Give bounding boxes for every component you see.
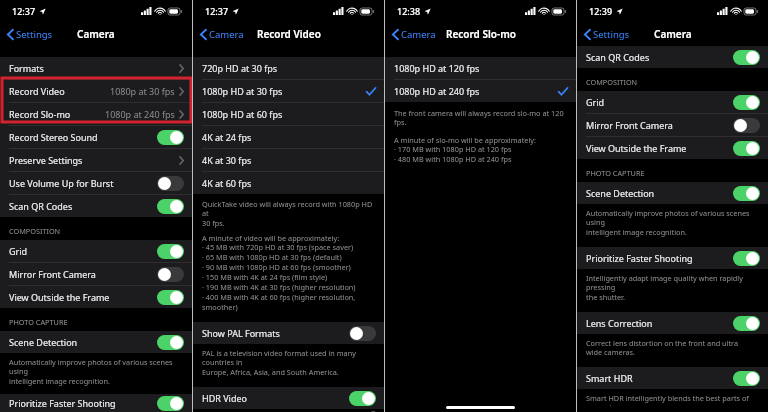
staticText: Record Slo-mo	[446, 27, 516, 41]
staticText: Smart HDR intelligently blends the best …	[586, 393, 759, 406]
button[interactable]: 1080p HD at 120 fps	[385, 57, 576, 80]
staticText: 720p HD at 30 fps	[202, 62, 278, 74]
staticText: Scene Detection	[9, 336, 78, 348]
button[interactable]: On	[157, 396, 184, 411]
staticText: 4K at 30 fps	[202, 154, 252, 166]
staticText: Grid	[9, 245, 28, 257]
staticText: 12:39	[589, 5, 613, 17]
staticText: Camera	[401, 28, 436, 41]
staticText: PAL is a television video format used in…	[202, 348, 375, 378]
button[interactable]: Back to Camera	[390, 25, 438, 44]
staticText: 1080p HD at 60 fps	[202, 108, 283, 120]
staticText: HDR Video	[202, 392, 247, 404]
staticText: Scene Detection	[586, 187, 655, 199]
button[interactable]: Show PAL Formats	[193, 322, 384, 344]
staticText: 1080p HD at 240 fps	[394, 85, 480, 97]
button[interactable]: Grid	[0, 240, 192, 263]
button[interactable]: Off	[733, 118, 760, 133]
staticText: 1080p HD at 120 fps	[394, 62, 480, 74]
button[interactable]: On	[733, 141, 760, 156]
button[interactable]: Prioritize Faster Shooting	[577, 247, 768, 269]
staticText: Prioritize Faster Shooting	[586, 252, 693, 264]
button[interactable]: Scene Detection	[0, 331, 192, 353]
button[interactable]: Smart HDR	[577, 367, 768, 389]
staticText: Prioritize Faster Shooting	[9, 397, 116, 409]
staticText: PHOTO CAPTURE	[9, 317, 192, 327]
button[interactable]: Preserve Settings	[0, 149, 192, 172]
button[interactable]: Scan QR Codes	[577, 46, 768, 68]
button[interactable]: 4K at 30 fps	[193, 149, 384, 172]
button[interactable]: Record Stereo Sound	[0, 126, 192, 149]
button[interactable]: 720p HD at 30 fps	[193, 57, 384, 80]
staticText: Record Video	[257, 27, 321, 41]
staticText: Preserve Settings	[9, 154, 83, 166]
button[interactable]: On	[733, 95, 760, 110]
staticText: Smart HDR	[586, 372, 633, 384]
button[interactable]: Back to Camera	[198, 25, 246, 44]
staticText: View Outside the Frame	[9, 291, 110, 303]
staticText: Settings	[16, 28, 53, 41]
staticText: Scan QR Codes	[9, 200, 73, 212]
staticText: Automatically improve photos of various …	[9, 357, 183, 387]
staticText: COMPOSITION	[9, 226, 192, 236]
staticText: Settings	[593, 28, 630, 41]
button[interactable]: On	[733, 251, 760, 266]
button[interactable]: Use Volume Up for Burst	[0, 172, 192, 195]
button[interactable]: Back to Settings	[5, 25, 55, 44]
staticText: A minute of video will be approximately:…	[202, 233, 375, 313]
button[interactable]: On	[733, 316, 760, 331]
staticText: Show PAL Formats	[202, 327, 280, 339]
staticText: Formats	[9, 62, 44, 74]
button[interactable]: Record Slo-mo	[0, 103, 192, 126]
staticText: 4K at 24 fps	[202, 131, 252, 143]
button[interactable]: 4K at 24 fps	[193, 126, 384, 149]
staticText: Mirror Front Camera	[9, 268, 96, 280]
button[interactable]: On	[157, 130, 184, 145]
staticText: Grid	[586, 96, 605, 108]
staticText: Mirror Front Camera	[586, 119, 673, 131]
staticText: 1080p HD at 30 fps	[202, 85, 283, 97]
button[interactable]: On	[733, 186, 760, 201]
button[interactable]: View Outside the Frame	[0, 286, 192, 308]
button[interactable]: Off	[349, 326, 376, 341]
staticText: Automatically improve photos of various …	[586, 208, 759, 238]
button[interactable]: Lens Correction	[577, 312, 768, 334]
button[interactable]: Mirror Front Camera	[0, 263, 192, 286]
staticText: Camera	[654, 27, 692, 41]
staticText: COMPOSITION	[586, 77, 768, 87]
button[interactable]: 1080p HD at 30 fps	[193, 80, 384, 103]
staticText: Record Stereo Sound	[9, 131, 98, 143]
button[interactable]: 1080p HD at 60 fps	[193, 103, 384, 126]
button[interactable]: On	[157, 290, 184, 305]
staticText: QuickTake video will always record with …	[202, 199, 375, 229]
button[interactable]: 4K at 60 fps	[193, 172, 384, 194]
staticText: Camera	[77, 27, 115, 41]
button[interactable]: View Outside the Frame	[577, 137, 768, 159]
staticText: 1080p at 240 fps	[105, 108, 175, 120]
button[interactable]: Mirror Front Camera	[577, 114, 768, 137]
button[interactable]: Off	[157, 176, 184, 191]
staticText: Scan QR Codes	[586, 51, 650, 63]
staticText: Use Volume Up for Burst	[9, 177, 114, 189]
button[interactable]: Record Video	[0, 80, 192, 103]
button[interactable]: Scene Detection	[577, 182, 768, 204]
button[interactable]: Back to Settings	[582, 25, 632, 44]
staticText: 12:37	[12, 5, 36, 17]
button[interactable]: 1080p HD at 240 fps	[385, 80, 576, 102]
button[interactable]: On	[733, 371, 760, 386]
button[interactable]: HDR Video	[193, 387, 384, 409]
staticText: 4K at 60 fps	[202, 177, 252, 189]
staticText: Record Video	[9, 85, 65, 97]
button[interactable]: On	[157, 199, 184, 214]
button[interactable]: On	[733, 50, 760, 65]
button[interactable]: On	[157, 335, 184, 350]
staticText: A minute of slo-mo will be approximately…	[394, 135, 567, 165]
button[interactable]: Prioritize Faster Shooting	[0, 394, 192, 412]
button[interactable]: On	[157, 244, 184, 259]
staticText: Camera	[209, 28, 244, 41]
button[interactable]: On	[349, 391, 376, 406]
button[interactable]: Scan QR Codes	[0, 195, 192, 217]
button[interactable]: Grid	[577, 91, 768, 114]
button[interactable]: Off	[157, 267, 184, 282]
button[interactable]: Formats	[0, 57, 192, 80]
